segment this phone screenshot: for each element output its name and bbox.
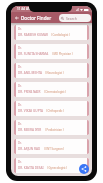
staticText: DR. KAVITA DESAI [18,166,44,170]
staticText: ( Neurologist ) [45,71,64,75]
button[interactable]: Dr. [14,63,89,78]
button[interactable]: Dr. [14,120,89,135]
staticText: 11:34 AM [17,7,31,11]
button[interactable]: Back [13,14,20,21]
staticText: ( Orthopedic ) [46,109,64,113]
staticText: Dr. [18,65,22,69]
staticText: Dr. [18,160,22,164]
staticText: ( Gynecologist ) [47,166,68,170]
staticText: Dr. [18,141,22,145]
staticText: ( Pediatrician ) [45,128,64,132]
button[interactable]: Dr. [14,139,89,154]
staticText: Search [66,16,77,21]
staticText: Dr. [18,27,22,31]
button[interactable]: Dr. [14,101,89,116]
button[interactable]: Dr. [14,158,89,173]
button[interactable]: Dr. [14,25,89,40]
button[interactable]: Dr. [14,82,89,97]
staticText: Dr. [18,46,22,50]
staticText: DR. ARJUN RAO [18,147,41,151]
staticText: DR. MEERA IYER [18,128,42,132]
staticText: DR. ANIL MEHTA [18,71,42,75]
button[interactable]: Share [79,164,89,174]
button[interactable]: Search [59,14,91,22]
staticText: DR. RAMESH KUMAR [18,33,48,37]
staticText: ( MD Physician ) [52,52,73,56]
staticText: DR. SUNITA SHARMA [18,52,49,56]
staticText: ( Dermatologist ) [44,90,66,94]
staticText: Doctor Finder [21,15,52,21]
staticText: DR. PRIYA NAIR [18,90,41,94]
staticText: DR. VIKAS GUPTA [18,109,43,113]
staticText: Dr. [18,103,22,107]
staticText: ( Cardiologist ) [51,33,70,37]
staticText: Dr. [18,84,22,88]
button[interactable]: Dr. [14,44,89,59]
staticText: ( ENT Surgeon ) [44,147,65,151]
staticText: Dr. [18,122,22,126]
